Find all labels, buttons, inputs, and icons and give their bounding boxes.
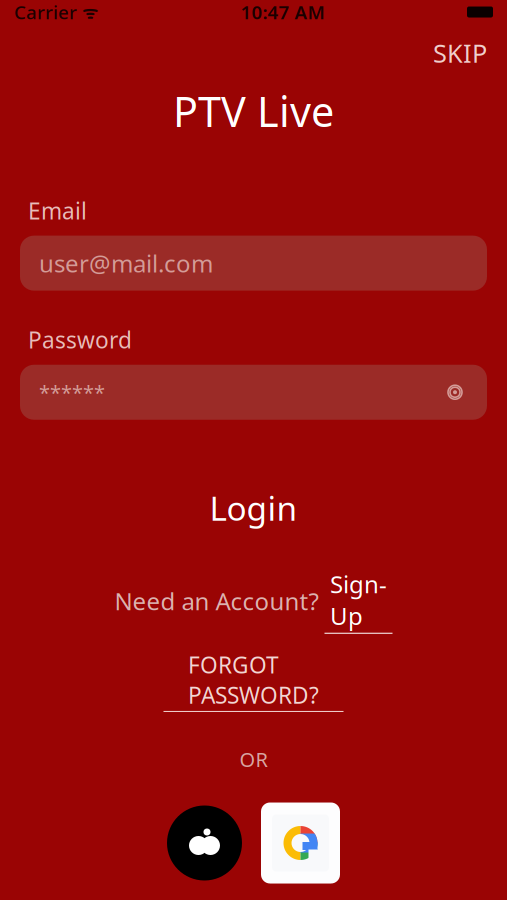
button[interactable]: Sign in with Google xyxy=(261,802,340,883)
staticText: Password xyxy=(28,325,132,355)
staticText: ᯤ xyxy=(77,0,98,23)
staticText: SKIP xyxy=(433,36,487,70)
staticText: Login xyxy=(209,486,297,530)
staticText: Need an Account? xyxy=(114,585,318,617)
button[interactable]: Show password xyxy=(429,372,481,412)
button[interactable]: SignUp xyxy=(324,568,392,634)
button[interactable]: Login xyxy=(0,476,507,540)
staticText: 10:47 AM xyxy=(240,0,324,24)
staticText: Carrier xyxy=(14,0,77,24)
staticText: SignUp xyxy=(330,568,387,632)
staticText: FORGOT PASSWORD? xyxy=(188,650,319,710)
staticText: user@mail.com xyxy=(39,247,213,279)
staticText: PTV Live xyxy=(173,84,334,138)
button[interactable]: Sign in with Apple xyxy=(167,805,242,880)
button[interactable]: FORGOT PASSWORD? xyxy=(163,650,343,712)
staticText: OR xyxy=(239,746,267,772)
button[interactable]: SKIP xyxy=(427,32,493,74)
staticText: Email xyxy=(28,195,87,226)
staticText: ****** xyxy=(39,379,105,406)
